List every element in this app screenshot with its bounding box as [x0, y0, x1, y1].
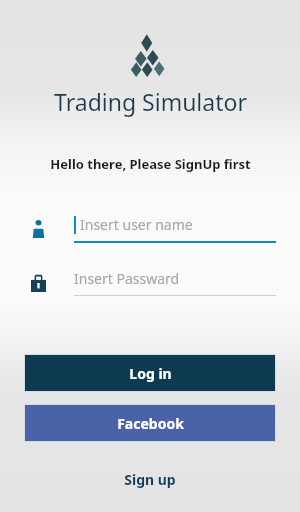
- staticText: Hello there, Please SignUp first: [50, 155, 251, 173]
- other: Password: [24, 274, 52, 292]
- other: User name: [24, 220, 52, 238]
- button[interactable]: User name: [24, 215, 276, 243]
- staticText: Insert Passward: [74, 269, 180, 288]
- staticText: Sign up: [124, 470, 176, 489]
- staticText: Log in: [129, 364, 172, 383]
- button[interactable]: Facebook: [25, 405, 275, 441]
- staticText: Insert user name: [80, 215, 193, 234]
- staticText: Facebook: [117, 414, 184, 433]
- staticText: Trading Simulator: [54, 86, 247, 117]
- button[interactable]: Password: [24, 269, 276, 296]
- button[interactable]: Sign up: [0, 464, 300, 495]
- button[interactable]: Log in: [25, 355, 275, 391]
